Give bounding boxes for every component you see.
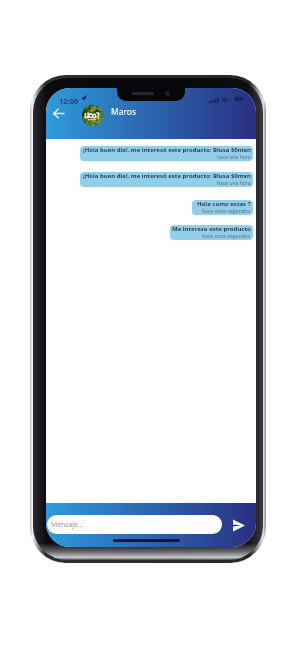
staticText: Hola como estas ? <box>197 200 251 208</box>
button[interactable]: Hola como estas ? <box>192 200 253 215</box>
staticText: 12:06 <box>59 96 79 106</box>
button[interactable]: ¡Hola buen día!, me interesó este produc… <box>80 146 253 161</box>
button[interactable]: Send <box>229 515 249 535</box>
button[interactable]: Mensaje... <box>47 515 222 534</box>
staticText: ¡Hola buen día!, me interesó este produc… <box>83 146 251 154</box>
staticText: hace una hora <box>217 180 251 187</box>
staticText: ¡Hola buen día!, me interesó este produc… <box>83 172 251 180</box>
button[interactable]: Me intereso este producto <box>170 225 253 240</box>
staticText: hace unos segundos <box>202 208 251 215</box>
staticText: Mensaje... <box>51 520 84 529</box>
button[interactable]: ¡Hola buen día!, me interesó este produc… <box>80 172 253 187</box>
staticText: Maros <box>111 106 137 118</box>
button[interactable]: Back <box>48 103 69 124</box>
staticText: hace unos segundos <box>202 233 251 240</box>
staticText: hace una hora <box>217 154 251 161</box>
staticText: Me intereso este producto <box>172 225 251 233</box>
